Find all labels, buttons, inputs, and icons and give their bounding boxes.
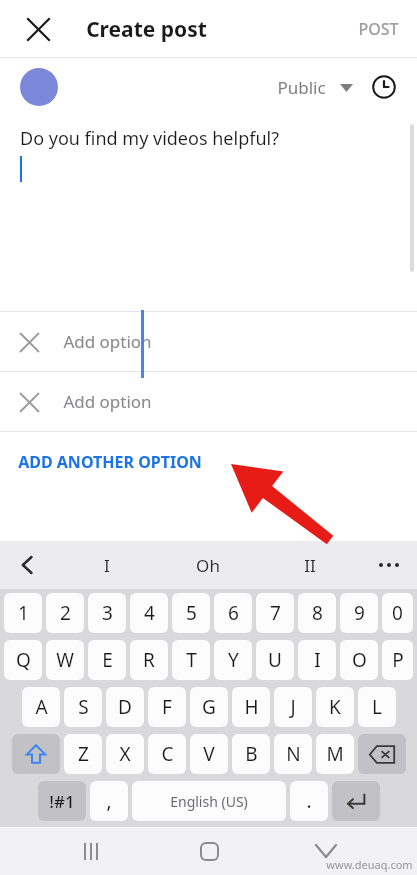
staticText: 1 — [18, 600, 29, 626]
button[interactable]: M — [316, 734, 354, 774]
button[interactable]: Do you find my videos helpful? — [0, 116, 417, 311]
staticText: www.deuaq.com — [326, 857, 413, 872]
staticText: 3 — [102, 600, 113, 626]
button[interactable]: Backspace — [358, 734, 406, 774]
button[interactable]: U — [256, 640, 294, 680]
button[interactable]: ADD ANOTHER OPTION — [0, 432, 417, 492]
staticText: Add option — [63, 390, 152, 413]
button[interactable]: II — [259, 541, 361, 589]
staticText: G — [202, 694, 216, 720]
staticText: Z — [78, 741, 89, 767]
staticText: 4 — [144, 600, 155, 626]
button[interactable]: , — [90, 781, 128, 821]
button[interactable]: Profile picture — [20, 68, 58, 106]
button[interactable]: S — [64, 687, 102, 727]
button[interactable]: English (US) — [132, 781, 286, 821]
staticText: M — [326, 741, 344, 767]
button[interactable]: F — [148, 687, 186, 727]
button[interactable]: G — [190, 687, 228, 727]
staticText: . — [306, 788, 312, 814]
button[interactable]: !#1 — [38, 781, 86, 821]
button[interactable]: I — [56, 541, 157, 589]
staticText: T — [186, 647, 197, 673]
button[interactable]: C — [148, 734, 186, 774]
button[interactable]: More options — [361, 541, 417, 589]
button[interactable]: E — [88, 640, 126, 680]
staticText: V — [203, 741, 215, 767]
button[interactable]: W — [46, 640, 84, 680]
button[interactable]: Close — [16, 7, 60, 51]
button[interactable]: A — [22, 687, 60, 727]
button[interactable]: Recent apps — [64, 827, 118, 875]
staticText: ADD ANOTHER OPTION — [18, 451, 202, 473]
button[interactable]: 5 — [172, 593, 210, 633]
staticText: English (US) — [170, 792, 248, 811]
button[interactable]: H — [232, 687, 270, 727]
button[interactable]: Y — [214, 640, 252, 680]
staticText: Do you find my videos helpful? — [20, 126, 279, 151]
button[interactable]: D — [106, 687, 144, 727]
staticText: !#1 — [49, 790, 75, 813]
button[interactable]: J — [274, 687, 312, 727]
button[interactable]: B — [232, 734, 270, 774]
staticText: X — [119, 741, 131, 767]
staticText: A — [35, 694, 48, 720]
staticText: 9 — [354, 600, 365, 626]
button[interactable]: POST — [350, 10, 407, 48]
staticText: I — [104, 554, 110, 577]
button[interactable]: Enter — [332, 781, 380, 821]
staticText: Y — [228, 647, 239, 673]
button[interactable]: Previous — [0, 541, 56, 589]
button[interactable]: 6 — [214, 593, 252, 633]
button[interactable]: P — [382, 640, 413, 680]
button[interactable]: 4 — [130, 593, 168, 633]
button[interactable]: I — [298, 640, 336, 680]
button[interactable]: Public — [271, 70, 359, 105]
button[interactable]: 9 — [340, 593, 378, 633]
button[interactable]: K — [316, 687, 354, 727]
staticText: 0 — [392, 600, 403, 626]
button[interactable]: Oh — [157, 541, 259, 589]
button[interactable]: R — [130, 640, 168, 680]
button[interactable]: T — [172, 640, 210, 680]
staticText: S — [78, 694, 89, 720]
button[interactable]: O — [340, 640, 378, 680]
button[interactable]: 0 — [382, 593, 413, 633]
staticText: L — [372, 694, 382, 720]
button[interactable]: Home — [182, 827, 236, 875]
button[interactable]: 1 — [4, 593, 42, 633]
button[interactable]: 8 — [298, 593, 336, 633]
staticText: F — [162, 694, 172, 720]
button[interactable]: Shift — [12, 734, 60, 774]
staticText: Public — [277, 76, 326, 99]
button[interactable]: L — [358, 687, 396, 727]
button[interactable]: Z — [64, 734, 102, 774]
staticText: U — [268, 647, 282, 673]
staticText: Add option — [63, 330, 152, 353]
button[interactable]: 2 — [46, 593, 84, 633]
button[interactable]: X — [106, 734, 144, 774]
staticText: J — [290, 694, 296, 720]
staticText: H — [244, 694, 259, 720]
staticText: W — [56, 647, 74, 673]
button[interactable]: 7 — [256, 593, 294, 633]
button[interactable]: Schedule post — [365, 68, 403, 106]
staticText: O — [352, 647, 367, 673]
button[interactable]: N — [274, 734, 312, 774]
button[interactable]: Remove option — [10, 323, 48, 361]
staticText: R — [143, 647, 155, 673]
button[interactable]: Remove option — [10, 383, 48, 421]
staticText: POST — [358, 18, 399, 40]
button[interactable]: V — [190, 734, 228, 774]
staticText: K — [329, 694, 341, 720]
button[interactable]: Remove option — [0, 372, 417, 431]
staticText: Oh — [196, 554, 220, 577]
button[interactable]: . — [290, 781, 328, 821]
button[interactable]: Hide keyboard — [299, 827, 353, 875]
button[interactable]: Remove option — [0, 312, 417, 371]
staticText: D — [118, 694, 132, 720]
staticText: Create post — [86, 15, 207, 44]
button[interactable]: 3 — [88, 593, 126, 633]
button[interactable]: Q — [4, 640, 42, 680]
staticText: 7 — [270, 600, 281, 626]
